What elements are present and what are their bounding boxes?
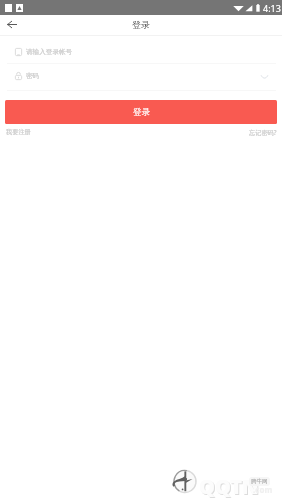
button[interactable]: Show password [258,71,270,83]
button[interactable]: Back [2,14,22,34]
staticText: 请输入登录帐号 [26,48,73,56]
staticText: QQTN [199,473,259,500]
staticText: .com [253,484,273,495]
button[interactable]: 忘记密码? [249,128,277,136]
staticText: 密码 [26,72,40,80]
staticText: QQTN [200,474,260,500]
staticText: 登录 [132,19,150,30]
staticText: 腾牛网 [251,478,268,485]
button[interactable]: 请输入登录帐号 [0,36,282,63]
button[interactable]: 密码 [0,64,282,90]
staticText: 忘记密码? [249,128,277,136]
staticText: 我要注册 [6,128,31,136]
button[interactable]: 我要注册 [6,128,31,136]
staticText: 4:13 [263,2,281,14]
button[interactable]: 登录 [5,100,277,124]
staticText: 登录 [133,107,150,118]
